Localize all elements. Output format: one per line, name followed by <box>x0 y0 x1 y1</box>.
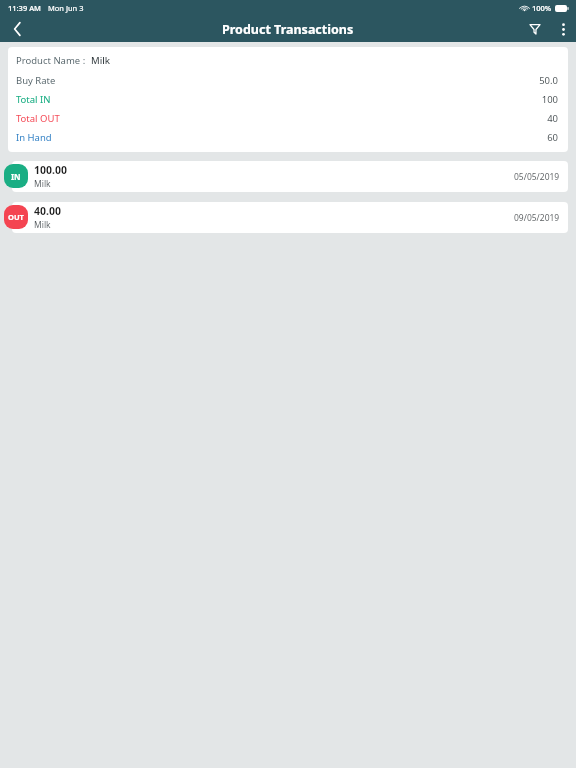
staticText: Total OUT <box>16 112 60 125</box>
button[interactable]: OUT <box>4 205 28 229</box>
staticText: 11:39 AM <box>8 3 41 13</box>
staticText: Milk <box>34 178 51 190</box>
staticText: Mon Jun 3 <box>48 3 84 13</box>
staticText: 100 <box>541 93 558 106</box>
staticText: In Hand <box>16 131 52 144</box>
staticText: 05/05/2019 <box>514 171 560 183</box>
staticText: Total IN <box>16 93 51 106</box>
staticText: 50.0 <box>539 74 558 87</box>
staticText: 100.00 <box>34 163 67 177</box>
staticText: 40 <box>547 112 558 125</box>
staticText: IN <box>11 171 21 182</box>
button[interactable]: Product Name : <box>8 47 568 152</box>
button[interactable]: Filter <box>520 16 550 42</box>
staticText: Product Transactions <box>222 21 354 38</box>
button[interactable]: IN <box>4 164 28 188</box>
staticText: 100% <box>532 3 552 13</box>
staticText: Product Name : <box>16 54 86 67</box>
staticText: OUT <box>8 212 24 222</box>
staticText: 60 <box>547 131 558 144</box>
button[interactable]: More options <box>550 16 576 42</box>
button[interactable]: 40.00 <box>12 202 568 233</box>
staticText: 09/05/2019 <box>514 212 560 224</box>
staticText: Buy Rate <box>16 74 56 87</box>
button[interactable]: Back <box>0 16 34 42</box>
staticText: Milk <box>34 219 51 231</box>
button[interactable]: 100.00 <box>12 161 568 192</box>
staticText: 40.00 <box>34 204 61 218</box>
staticText: Milk <box>91 54 111 67</box>
